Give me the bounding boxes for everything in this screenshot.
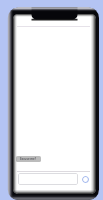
button[interactable]: Send bbox=[82, 176, 89, 183]
button[interactable] bbox=[18, 173, 78, 185]
staticText: Excuse me? bbox=[20, 157, 37, 161]
button[interactable]: Excuse me? bbox=[16, 156, 41, 162]
